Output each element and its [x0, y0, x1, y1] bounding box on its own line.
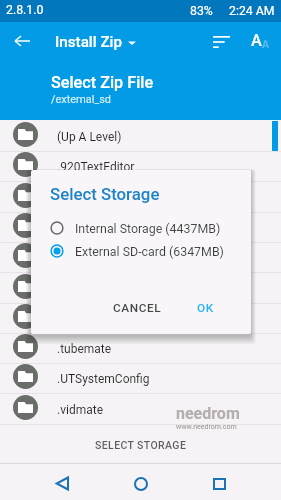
- staticText: .UTSystemConfig: [57, 372, 150, 386]
- button[interactable]: Back: [45, 466, 79, 500]
- button[interactable]: Back: [6, 26, 38, 58]
- button[interactable]: .mmsyscache: [0, 303, 281, 334]
- staticText: 83%: [190, 4, 213, 18]
- button[interactable]: SELECT STORAGE: [0, 427, 281, 463]
- button[interactable]: Home: [124, 467, 158, 500]
- staticText: OK: [197, 301, 214, 315]
- button[interactable]: Text size: [242, 25, 276, 59]
- staticText: CANCEL: [113, 301, 162, 315]
- button[interactable]: Internal Storage (4437MB): [31, 217, 251, 239]
- staticText: SELECT STORAGE: [95, 439, 187, 451]
- staticText: .estrongs: [57, 221, 107, 235]
- button[interactable]: .920TextEditor: [0, 151, 281, 182]
- staticText: /external_sd: [51, 93, 111, 106]
- staticText: www.needrom.com: [176, 423, 237, 431]
- staticText: Select Zip File: [51, 73, 154, 92]
- button[interactable]: .UTSystemConfig: [0, 363, 281, 394]
- staticText: needrom: [176, 404, 240, 423]
- staticText: .920TextEditor: [57, 160, 135, 174]
- button[interactable]: .tubemate: [0, 333, 281, 364]
- staticText: 2:24 AM: [229, 4, 275, 18]
- button[interactable]: .estrongs: [0, 212, 281, 243]
- button[interactable]: .hiddenFiles: [0, 242, 281, 273]
- staticText: External SD-card (6347MB): [75, 244, 224, 259]
- button[interactable]: (Up A Level): [0, 121, 281, 152]
- button[interactable]: .vidmate: [0, 394, 281, 425]
- button[interactable]: CANCEL: [105, 295, 170, 321]
- button[interactable]: Sort: [204, 25, 238, 59]
- button[interactable]: Recents: [202, 467, 236, 500]
- staticText: (Up A Level): [57, 130, 122, 144]
- staticText: .hiddenFiles: [57, 251, 122, 265]
- staticText: Internal Storage (4437MB): [75, 221, 221, 236]
- staticText: Install Zip: [55, 33, 123, 51]
- staticText: .tubemate: [57, 342, 112, 356]
- button[interactable]: External SD-card (6347MB): [31, 240, 251, 262]
- staticText: 2.8.1.0: [6, 3, 44, 17]
- staticText: .BDM: [57, 191, 86, 205]
- button[interactable]: Install Zip: [55, 33, 136, 51]
- staticText: A: [251, 31, 262, 50]
- button[interactable]: .BDM: [0, 182, 281, 213]
- staticText: A: [262, 38, 270, 50]
- button[interactable]: .LittleBrother: [0, 273, 281, 304]
- staticText: Select Storage: [50, 184, 160, 204]
- button[interactable]: OK: [189, 295, 222, 321]
- staticText: .vidmate: [57, 403, 104, 417]
